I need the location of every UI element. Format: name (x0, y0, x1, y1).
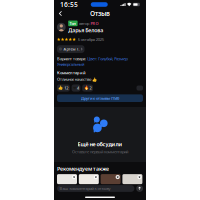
staticText: Цвет: Голубой, Размер: (87, 56, 128, 61)
staticText: Универсальный (57, 61, 84, 67)
staticText: 12 (64, 85, 68, 91)
staticText: Отличное качество 👍 (57, 77, 97, 82)
staticText: 👍 (58, 86, 63, 90)
staticText: 4 (77, 85, 79, 91)
staticText: Артем Т. (63, 46, 79, 52)
button[interactable]: 👍 (57, 84, 70, 92)
staticText: Рекомендуем также (57, 165, 109, 172)
staticText: Дарья Белова (68, 27, 103, 34)
button[interactable]: Назад (56, 9, 64, 18)
staticText: автор (79, 21, 89, 26)
staticText: Отзыв (90, 9, 110, 18)
staticText: 16:55 (60, 0, 78, 9)
staticText: 2 (89, 85, 91, 91)
button[interactable]: Отправить (136, 185, 143, 192)
button[interactable]: ❤ (72, 84, 80, 92)
button[interactable]: Товар (122, 174, 142, 184)
staticText: Другие отзывы (158) (81, 95, 119, 101)
staticText: 🔥 (84, 86, 89, 90)
button[interactable]: Ваш комментарий к отзыву (57, 185, 134, 192)
staticText: Оставьте первый комментарий (72, 149, 128, 154)
button[interactable]: Товар (79, 174, 99, 184)
button[interactable]: 🔥 (82, 84, 93, 92)
button[interactable]: Другие отзывы (158) (57, 94, 143, 102)
staticText: Вариант товара: (57, 56, 86, 61)
button[interactable]: Добавить реакцию (136, 85, 143, 90)
staticText: Комментарий (57, 70, 86, 75)
staticText: ❤ (73, 86, 76, 90)
button[interactable]: Артем Т. (57, 45, 84, 53)
staticText: Ваш комментарий к отзыву (59, 186, 110, 191)
button[interactable]: Товар (101, 174, 121, 184)
staticText: PRO (90, 21, 98, 26)
staticText: 6 октября 2025 (78, 37, 104, 42)
staticText: Ещё не обсудили (77, 141, 122, 148)
button[interactable]: Товар (57, 174, 77, 184)
staticText: Топ (69, 21, 76, 26)
